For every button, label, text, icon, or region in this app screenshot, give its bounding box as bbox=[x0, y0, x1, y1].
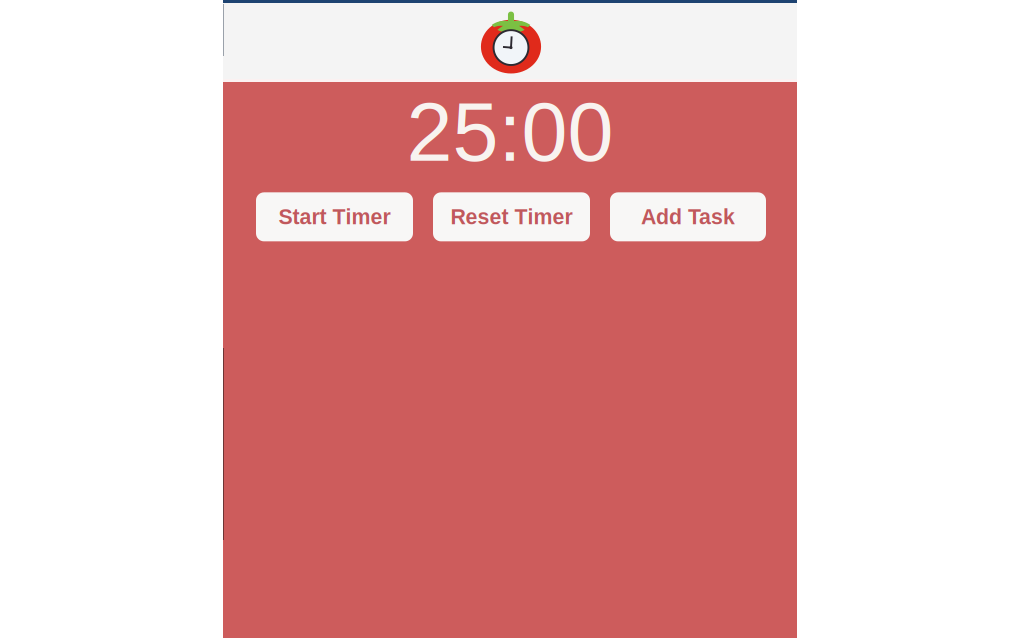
button[interactable]: Reset Timer bbox=[433, 192, 590, 241]
staticText: 25:00 bbox=[406, 86, 613, 178]
staticText: Reset Timer bbox=[450, 205, 572, 229]
button[interactable]: Start Timer bbox=[256, 192, 413, 241]
button[interactable]: Add Task bbox=[610, 192, 766, 241]
staticText: Start Timer bbox=[278, 205, 390, 229]
staticText: Add Task bbox=[641, 205, 735, 229]
